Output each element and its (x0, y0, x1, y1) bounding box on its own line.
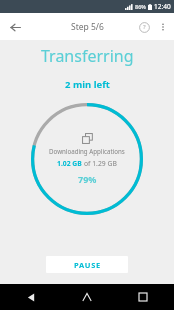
button[interactable]: Help (134, 17, 154, 37)
button[interactable]: Home (76, 286, 98, 308)
staticText: 79% (78, 173, 97, 185)
staticText: 2 min left (65, 78, 110, 91)
staticText: of 1.29 GB (84, 159, 117, 168)
staticText: Transferring (41, 45, 134, 67)
staticText: 86% (135, 3, 146, 10)
button[interactable]: Back (20, 286, 42, 308)
button[interactable]: Back (4, 16, 26, 38)
button[interactable]: Recent apps (132, 286, 154, 308)
staticText: ? (143, 23, 146, 31)
button[interactable]: PAUSE (46, 256, 128, 273)
staticText: 12:40 (154, 2, 171, 11)
staticText: 1.02 GB (57, 159, 82, 168)
staticText: PAUSE (74, 260, 101, 270)
staticText: Step 5/6 (71, 21, 104, 33)
button[interactable]: More options (154, 18, 172, 36)
staticText: Downloading Applications (49, 147, 125, 155)
